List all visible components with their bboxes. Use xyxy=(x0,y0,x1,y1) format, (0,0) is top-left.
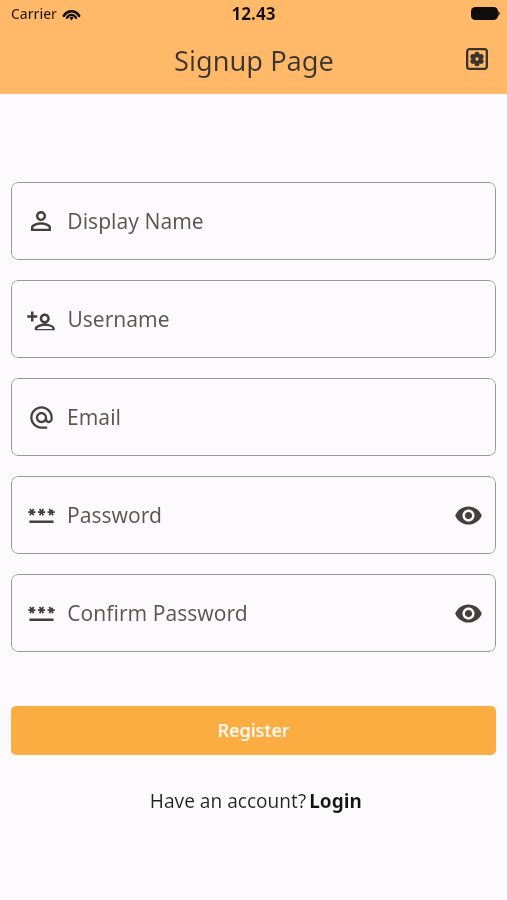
staticText: Display Name xyxy=(67,207,204,236)
button[interactable]: Password xyxy=(11,476,496,554)
button[interactable]: Register xyxy=(11,706,496,755)
staticText: Carrier xyxy=(11,4,57,23)
staticText: Register xyxy=(217,718,290,743)
button[interactable]: Login xyxy=(309,788,362,814)
staticText: Confirm Password xyxy=(67,599,248,628)
staticText: Email xyxy=(67,403,121,432)
button[interactable]: Email xyxy=(11,378,496,456)
button[interactable]: Toggle password visibility xyxy=(445,492,491,538)
button[interactable]: Settings xyxy=(459,41,495,77)
button[interactable]: Username xyxy=(11,280,496,358)
staticText: 12.43 xyxy=(231,2,276,25)
staticText: Signup Page xyxy=(174,42,334,79)
staticText: Login xyxy=(309,788,362,814)
staticText: Password xyxy=(67,501,162,530)
button[interactable]: Display Name xyxy=(11,182,496,260)
staticText: Username xyxy=(67,305,170,334)
button[interactable]: Toggle password visibility xyxy=(445,590,491,636)
button[interactable]: Confirm Password xyxy=(11,574,496,652)
staticText: Have an account? xyxy=(147,788,309,814)
